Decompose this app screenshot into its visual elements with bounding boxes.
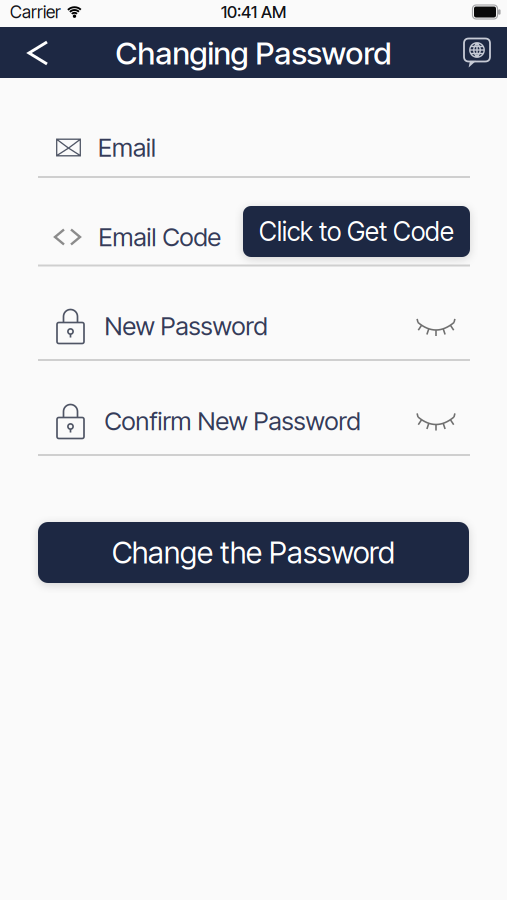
button[interactable]: Change Language bbox=[457, 31, 497, 75]
staticText: Carrier bbox=[10, 1, 61, 22]
staticText: New Password bbox=[104, 311, 267, 341]
button[interactable]: Change the Password bbox=[38, 522, 469, 583]
staticText: Email bbox=[98, 132, 156, 163]
staticText: Click to Get Code bbox=[259, 216, 454, 247]
staticText: Change the Password bbox=[112, 534, 395, 571]
staticText: Confirm New Password bbox=[104, 406, 360, 436]
button[interactable]: Show Password bbox=[414, 404, 458, 440]
staticText: 10:41 AM bbox=[221, 2, 286, 22]
staticText: Changing Password bbox=[115, 34, 391, 72]
button[interactable]: Show Password bbox=[414, 309, 458, 345]
button[interactable]: Back bbox=[18, 31, 58, 75]
button[interactable]: Click to Get Code bbox=[243, 206, 470, 257]
staticText: Email Code bbox=[98, 222, 221, 252]
